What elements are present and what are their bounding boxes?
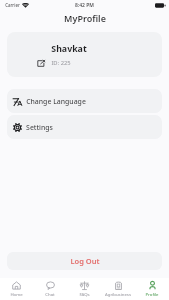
button[interactable]: Profile [135, 278, 169, 300]
staticText: FAQs [79, 291, 90, 297]
staticText: Log Out [70, 256, 100, 266]
staticText: 8:42 PM [75, 2, 94, 9]
button[interactable]: Agribusiness [101, 278, 135, 300]
staticText: Change Language [26, 97, 86, 106]
staticText: MyProfile [64, 12, 106, 24]
staticText: Shavkat [51, 43, 87, 55]
button[interactable]: Shavkat [7, 32, 162, 77]
button[interactable]: Chat [33, 278, 67, 300]
button[interactable]: FAQs [67, 278, 101, 300]
staticText: Agribusiness [105, 291, 131, 297]
staticText: Chat [45, 291, 55, 297]
staticText: Settings [26, 123, 53, 132]
staticText: Home [10, 291, 23, 297]
staticText: ID: 225 [51, 59, 71, 67]
button[interactable]: Settings [7, 115, 162, 139]
button[interactable]: Home [0, 278, 33, 300]
button[interactable]: Log Out [7, 252, 162, 270]
staticText: Carrier [5, 2, 20, 8]
button[interactable]: Change Language [7, 89, 162, 113]
staticText: Profile [145, 291, 159, 297]
